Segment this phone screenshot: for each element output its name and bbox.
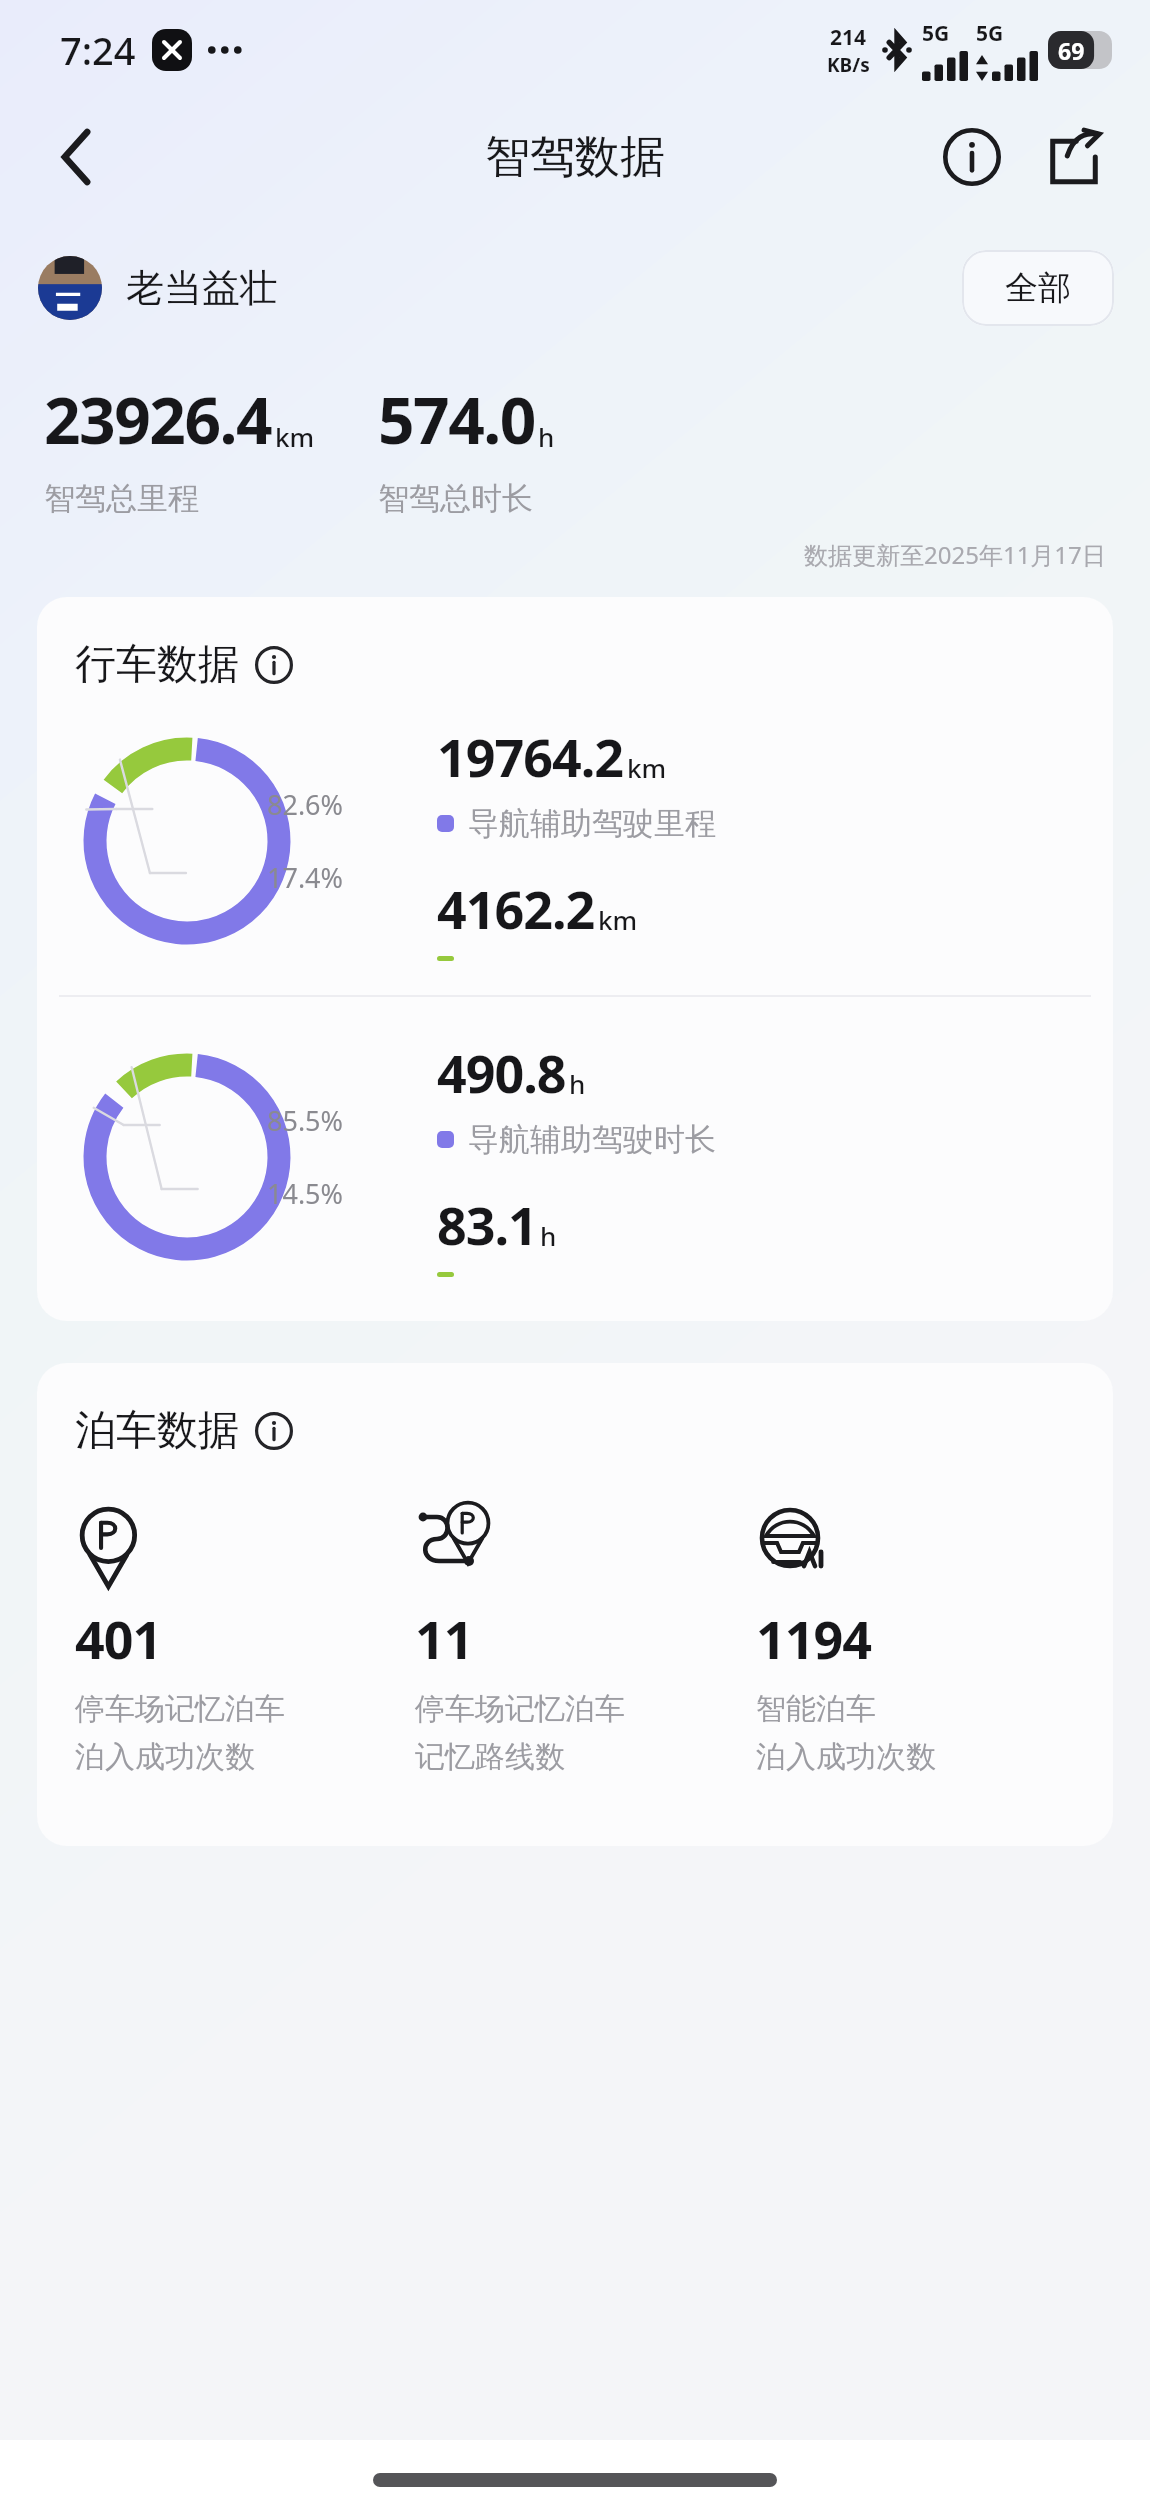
staticText: 智能泊车	[756, 1690, 876, 1728]
staticText: 泊车数据	[75, 1405, 239, 1457]
staticText: 智驾总时长	[378, 479, 533, 518]
button[interactable]: 全部	[962, 250, 1114, 326]
staticText: 5G	[976, 19, 1004, 48]
staticText: h	[540, 1218, 557, 1253]
staticText: 4162.2	[437, 873, 595, 944]
staticText: 行车数据	[75, 639, 239, 691]
staticText: 69	[1058, 35, 1085, 66]
button[interactable]: 老当益壮	[38, 256, 278, 320]
staticText: 401	[75, 1603, 162, 1674]
staticText: 智驾数据	[485, 129, 665, 186]
staticText: KB/s	[827, 52, 870, 78]
staticText: 19764.2	[437, 721, 624, 792]
staticText: km	[598, 902, 638, 937]
button[interactable]: 11	[415, 1505, 756, 1776]
staticText: 490.8	[437, 1037, 566, 1108]
staticText: 智驾总里程	[44, 479, 199, 518]
staticText: km	[627, 750, 667, 785]
staticText: km	[275, 419, 315, 454]
staticText: 17.4%	[267, 859, 344, 896]
staticText: 214	[830, 23, 867, 52]
staticText: 23926.4	[44, 376, 272, 463]
staticText: 老当益壮	[126, 264, 278, 312]
button[interactable]: Info	[930, 115, 1014, 199]
staticText: h	[569, 1066, 586, 1101]
staticText: 停车场记忆泊车	[75, 1690, 285, 1728]
staticText: 全部	[1005, 267, 1071, 309]
button[interactable]: Back	[34, 114, 120, 200]
staticText: 泊入成功次数	[756, 1738, 936, 1776]
staticText: 82.6%	[267, 786, 344, 823]
staticText: 5G	[922, 19, 950, 48]
button[interactable]: 1194	[756, 1505, 1097, 1776]
staticText: h	[538, 419, 555, 454]
staticText: 停车场记忆泊车	[415, 1690, 625, 1728]
staticText: 7:24	[60, 24, 136, 76]
staticText: 导航辅助驾驶时长	[468, 1120, 716, 1159]
button[interactable]: 泊车数据	[75, 1405, 293, 1457]
button[interactable]: 401	[75, 1505, 415, 1776]
staticText: 11	[415, 1603, 473, 1674]
staticText: 83.1	[437, 1189, 537, 1260]
staticText: 1194	[756, 1603, 871, 1674]
staticText: 泊入成功次数	[75, 1738, 255, 1776]
button[interactable]: Share	[1032, 115, 1116, 199]
staticText: 14.5%	[267, 1175, 344, 1212]
staticText: 数据更新至2025年11月17日	[804, 538, 1106, 571]
staticText: 记忆路线数	[415, 1738, 565, 1776]
staticText: 574.0	[378, 376, 535, 463]
button[interactable]: 行车数据	[75, 639, 293, 691]
staticText: 导航辅助驾驶里程	[468, 804, 716, 843]
staticText: 85.5%	[267, 1102, 344, 1139]
